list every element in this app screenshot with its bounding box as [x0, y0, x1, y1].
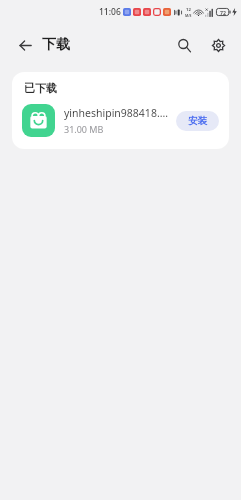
button[interactable]: 安装 [176, 111, 219, 131]
button[interactable]: yinheshipin988418.apk [12, 102, 229, 149]
staticText: M/S [185, 13, 192, 18]
staticText: 12 [186, 7, 191, 13]
staticText: 11:06 [99, 6, 121, 18]
staticText: 72 [220, 9, 226, 16]
button[interactable]: Settings [203, 30, 233, 60]
button[interactable]: Back [10, 30, 40, 60]
button[interactable]: Search [169, 30, 199, 60]
staticText: 下载 [42, 36, 70, 54]
staticText: 已下载 [24, 81, 57, 95]
staticText: 安装 [188, 115, 207, 127]
staticText: 31.00 MB [64, 123, 104, 135]
staticText: yinheshipin988418.apk [64, 106, 170, 120]
